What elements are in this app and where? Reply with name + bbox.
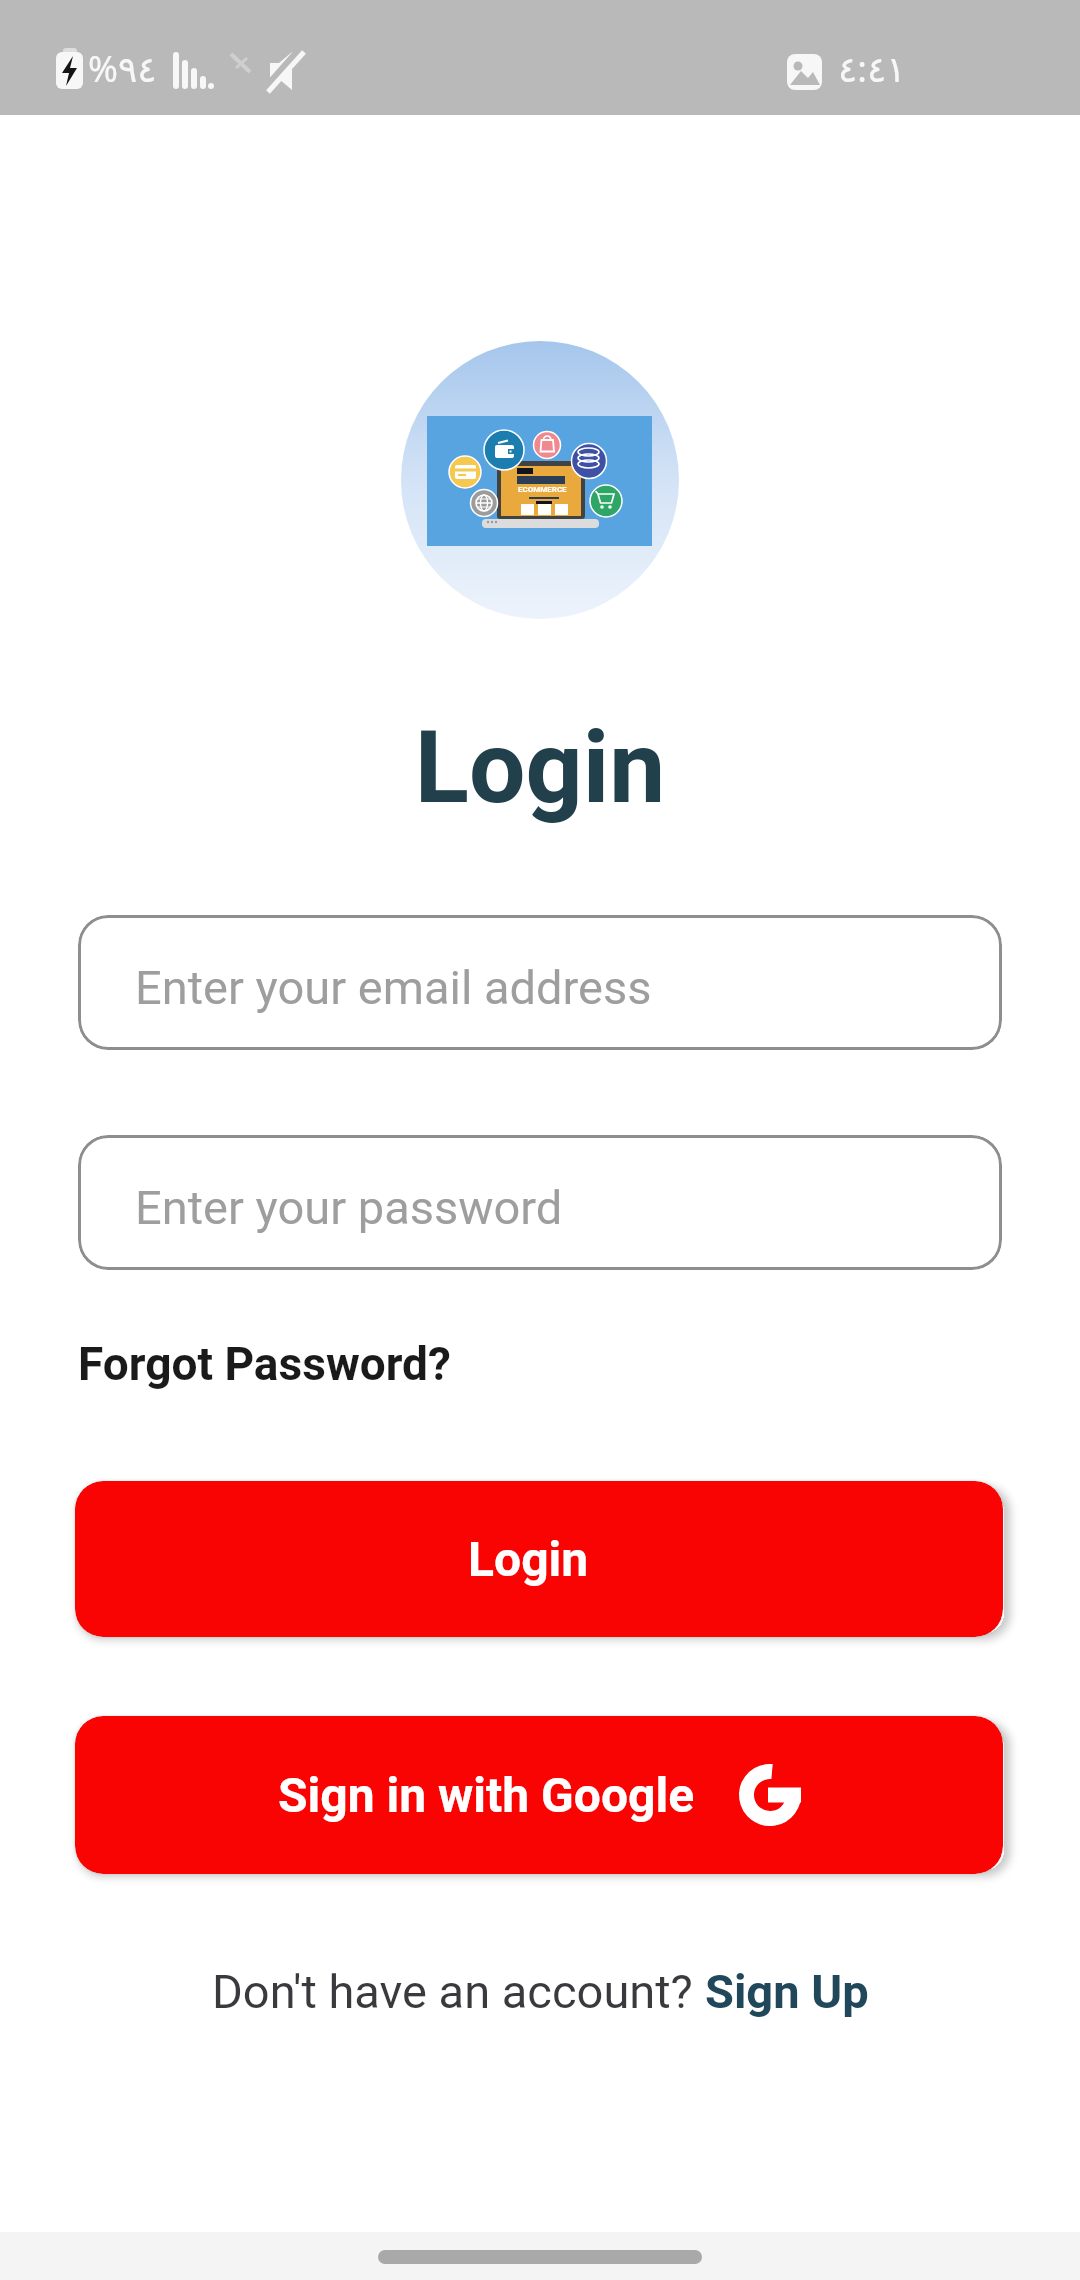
staticText: ٤:٤١ — [838, 44, 906, 93]
button[interactable]: Enter your email address — [78, 915, 1002, 1050]
button[interactable]: Sign Up — [705, 1964, 869, 2019]
staticText: Forgot Password? — [78, 1337, 451, 1391]
staticText: Sign Up — [705, 1964, 869, 2019]
staticText: Enter your password — [135, 1180, 563, 1235]
staticText: %٩٤ — [88, 44, 157, 93]
staticText: Login — [468, 1531, 589, 1587]
button[interactable]: Enter your password — [78, 1135, 1002, 1270]
staticText: Login — [0, 709, 1080, 826]
staticText: ECOMMERCE — [518, 485, 567, 494]
staticText: Sign in with Google — [278, 1767, 695, 1823]
staticText: Don't have an account? — [212, 1964, 705, 2019]
staticText: Enter your email address — [135, 960, 652, 1015]
button[interactable]: Forgot Password? — [78, 1337, 451, 1391]
button[interactable]: Sign in with Google — [75, 1716, 1003, 1874]
button[interactable]: Login — [75, 1481, 1003, 1637]
